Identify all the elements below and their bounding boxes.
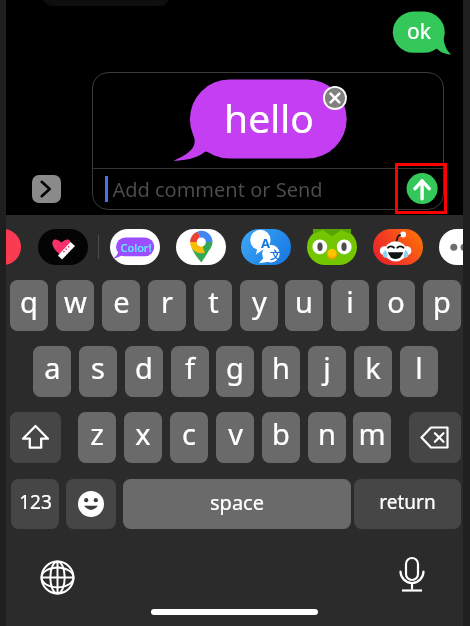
button[interactable]: [79, 346, 117, 397]
staticText: l: [415, 348, 423, 387]
staticText: hello: [224, 91, 314, 144]
button[interactable]: [354, 346, 392, 397]
button[interactable]: [125, 346, 163, 397]
staticText: u: [295, 282, 313, 321]
button[interactable]: [33, 346, 71, 397]
button[interactable]: [102, 280, 140, 331]
staticText: m: [358, 414, 386, 453]
staticText: x: [135, 414, 151, 453]
staticText: Color!: [120, 240, 152, 255]
button[interactable]: [400, 346, 438, 397]
button[interactable]: Translate: [241, 229, 291, 265]
button[interactable]: Next keyboard: [37, 557, 78, 598]
button[interactable]: [10, 280, 48, 331]
button[interactable]: [124, 412, 162, 463]
button[interactable]: [353, 412, 391, 463]
staticText: t: [208, 282, 219, 321]
staticText: e: [113, 282, 130, 321]
staticText: i: [346, 282, 354, 321]
staticText: Add comment or Send: [112, 176, 323, 198]
button[interactable]: App Store: [0, 229, 21, 265]
staticText: ok: [407, 17, 431, 46]
button[interactable]: Health: [38, 229, 88, 265]
button[interactable]: [308, 412, 346, 463]
button[interactable]: [354, 479, 461, 529]
button[interactable]: [56, 280, 94, 331]
staticText: w: [64, 282, 87, 321]
staticText: 123: [19, 489, 52, 515]
staticText: j: [323, 348, 331, 387]
staticText: y: [252, 282, 267, 321]
button[interactable]: [423, 280, 461, 331]
button[interactable]: More apps: [439, 229, 470, 265]
button[interactable]: Reddit: [373, 229, 423, 265]
staticText: z: [90, 414, 104, 453]
button[interactable]: Dictation: [392, 553, 432, 598]
staticText: f: [185, 348, 195, 387]
button[interactable]: Color: [110, 229, 160, 265]
button[interactable]: [331, 280, 369, 331]
button[interactable]: [170, 412, 208, 463]
button[interactable]: [168, 74, 360, 168]
staticText: p: [433, 282, 451, 321]
staticText: s: [91, 348, 105, 387]
button[interactable]: Expand app drawer: [32, 175, 61, 203]
button[interactable]: [216, 412, 254, 463]
button[interactable]: Backspace: [409, 412, 461, 463]
staticText: c: [182, 414, 196, 453]
staticText: b: [272, 414, 290, 453]
button[interactable]: [78, 412, 116, 463]
staticText: g: [226, 348, 244, 387]
button[interactable]: Emoji keyboard: [66, 479, 116, 529]
staticText: r: [161, 282, 173, 321]
staticText: q: [20, 282, 38, 321]
button[interactable]: [194, 280, 232, 331]
button[interactable]: Send: [395, 163, 447, 214]
button[interactable]: [285, 280, 323, 331]
button[interactable]: [148, 280, 186, 331]
staticText: n: [318, 414, 336, 453]
button[interactable]: Maps: [176, 229, 226, 265]
staticText: v: [228, 414, 243, 453]
button[interactable]: [380, 6, 466, 62]
button[interactable]: Duolingo: [307, 229, 357, 265]
staticText: a: [44, 348, 61, 387]
button[interactable]: [262, 412, 300, 463]
staticText: A: [261, 234, 270, 252]
button[interactable]: [262, 346, 300, 397]
staticText: k: [365, 348, 381, 387]
button[interactable]: [377, 280, 415, 331]
button[interactable]: [123, 479, 351, 529]
button[interactable]: [11, 479, 59, 529]
button[interactable]: [216, 346, 254, 397]
staticText: return: [379, 489, 436, 515]
button[interactable]: [240, 280, 278, 331]
button[interactable]: Shift: [10, 412, 61, 463]
staticText: space: [210, 489, 264, 516]
staticText: 文: [270, 248, 281, 262]
button[interactable]: [308, 346, 346, 397]
staticText: d: [135, 348, 153, 387]
staticText: o: [387, 282, 405, 321]
button[interactable]: [171, 346, 209, 397]
staticText: h: [272, 348, 290, 387]
button[interactable]: Remove: [322, 85, 348, 111]
